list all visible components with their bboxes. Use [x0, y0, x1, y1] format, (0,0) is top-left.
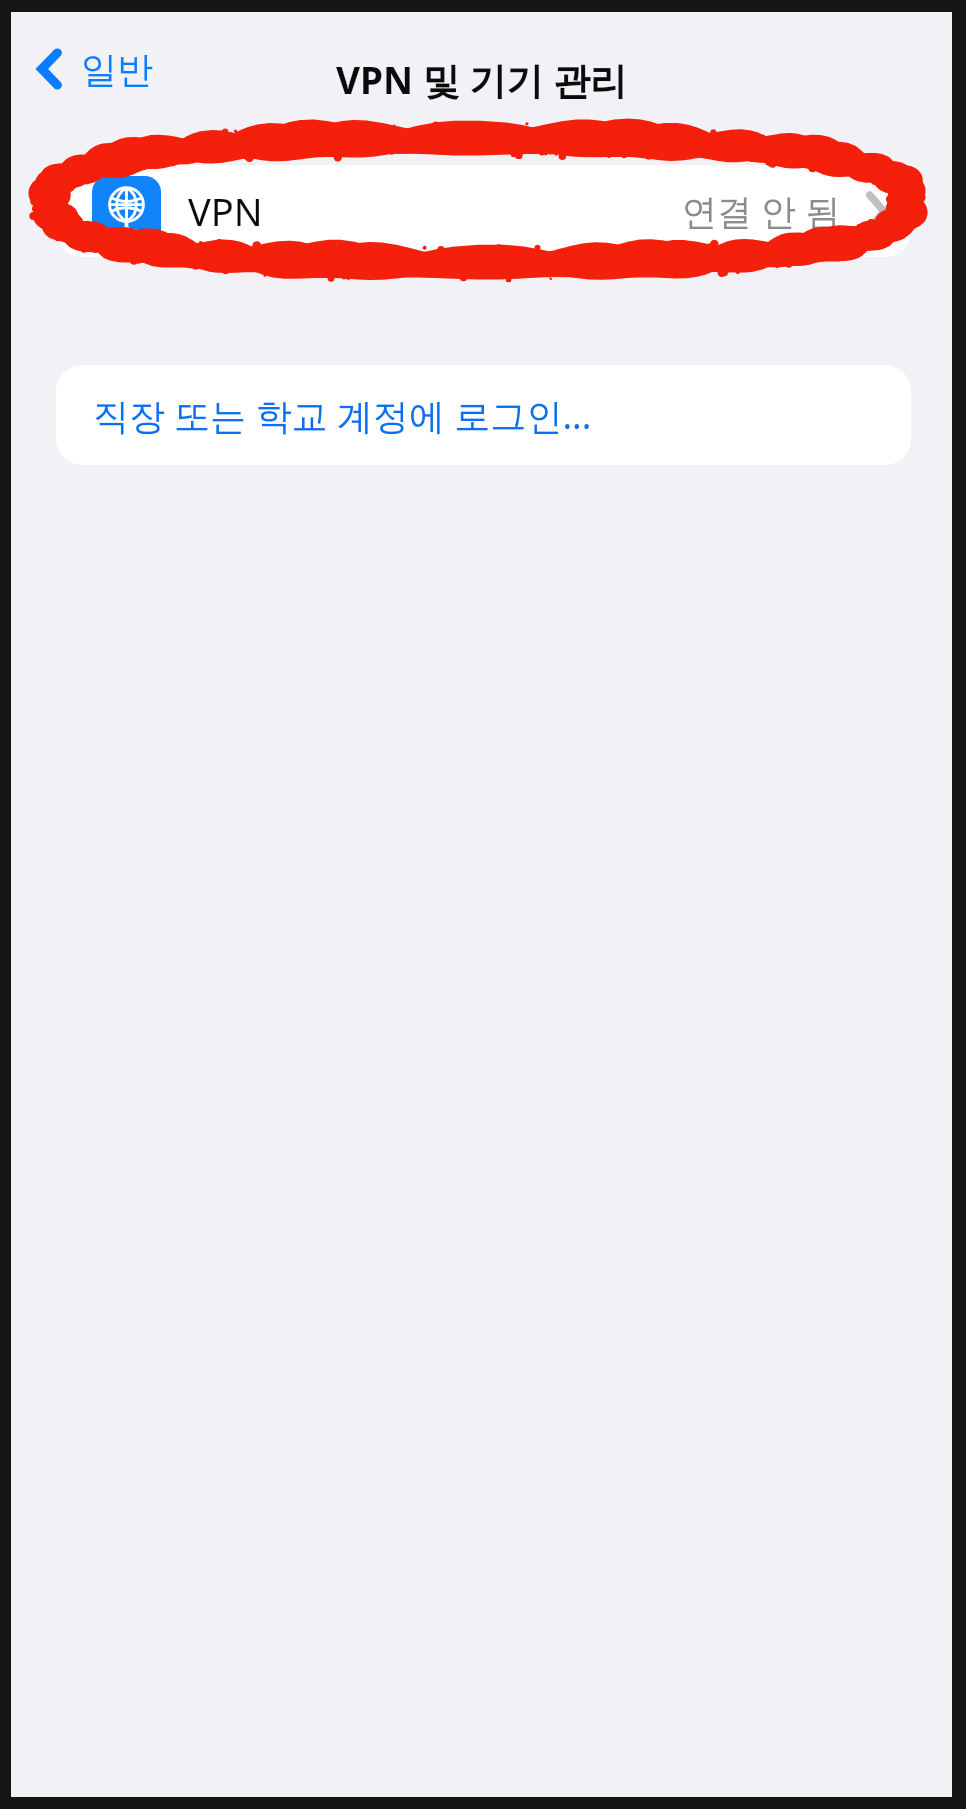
button[interactable]: 일반 [25, 32, 195, 106]
staticText: VPN 및 기기 관리 [11, 54, 952, 105]
staticText: VPN [188, 185, 263, 237]
button[interactable]: 직장 또는 학교 계정에 로그인... [56, 365, 911, 465]
staticText: 일반 [81, 47, 153, 92]
button[interactable]: VPN [56, 165, 911, 257]
staticText: 연결 안 됨 [682, 187, 841, 235]
staticText: 직장 또는 학교 계정에 로그인... [93, 391, 592, 440]
other: VPN 설정 열기 [867, 195, 885, 228]
